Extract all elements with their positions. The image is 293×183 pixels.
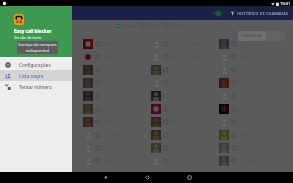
button[interactable]: Pedro Miguel Pinto [83, 76, 151, 89]
button[interactable]: Nelson Dias [219, 102, 287, 115]
staticText: António [36, 80, 51, 85]
button[interactable]: Incluindo [116, 23, 138, 28]
button[interactable]: Mãe Telemóvel [83, 115, 151, 128]
button[interactable]: Beatriz [15, 102, 83, 115]
button[interactable]: Nuno Miranda [151, 115, 219, 128]
button[interactable]: Configurações [0, 59, 72, 70]
button[interactable]: Paulo [219, 128, 287, 141]
staticText: Aeroporto [36, 41, 55, 46]
button[interactable]: Ana Sofia Lopes [83, 102, 151, 115]
button[interactable]: Carlos Silva [83, 63, 151, 76]
button[interactable]: Aeroporto [15, 37, 83, 50]
staticText: CANCELAR [241, 33, 263, 39]
staticText: Serviço de compras indisponível [18, 42, 57, 53]
button[interactable]: Angela Matos [83, 89, 151, 102]
staticText: Versão de teste [14, 35, 42, 40]
button[interactable]: Recents [179, 172, 199, 183]
staticText: André Costa [36, 67, 58, 72]
staticText: Configurações [19, 62, 51, 68]
button[interactable]: Banco [15, 89, 83, 102]
button[interactable]: Diana [151, 141, 219, 154]
button[interactable]: António [15, 76, 83, 89]
button[interactable]: Caixa Geral Dep [83, 50, 151, 63]
button[interactable]: Back [95, 172, 115, 183]
button[interactable]: Emergência [219, 154, 287, 167]
button[interactable]: André Costa [15, 63, 83, 76]
button[interactable]: Sara [151, 102, 219, 115]
button[interactable]: Casa Porto [15, 141, 83, 154]
button[interactable]: Tentar número [0, 81, 72, 92]
staticText: Alexandra [36, 54, 54, 59]
staticText: 19:01 [280, 1, 291, 6]
button[interactable]: Ativar bloqueio [211, 8, 223, 19]
button[interactable]: Bruno Santos [15, 115, 83, 128]
button[interactable]: HISTÓRICO DE CHAMADAS [229, 9, 290, 18]
staticText: Easy call blocker [14, 28, 52, 34]
button[interactable]: Clínica [15, 154, 83, 167]
button[interactable]: CANCELAR [238, 31, 266, 41]
button[interactable]: Cristina Seguros [219, 141, 287, 154]
button[interactable]: Vodafone [83, 37, 151, 50]
button[interactable]: Hugo Pires [151, 128, 219, 141]
button[interactable]: Home [137, 172, 157, 183]
button[interactable]: Rui [151, 63, 219, 76]
button[interactable]: Carlos [151, 89, 219, 102]
button[interactable]: Gil [219, 37, 287, 50]
button[interactable]: Alexandra [15, 50, 83, 63]
staticText: HISTÓRICO DE CHAMADAS [237, 11, 289, 16]
button[interactable]: Lista negra [0, 70, 72, 81]
staticText: Lista negra [19, 73, 44, 79]
button[interactable]: Vitória Ferreira [219, 76, 287, 89]
button[interactable]: Carla [15, 128, 83, 141]
